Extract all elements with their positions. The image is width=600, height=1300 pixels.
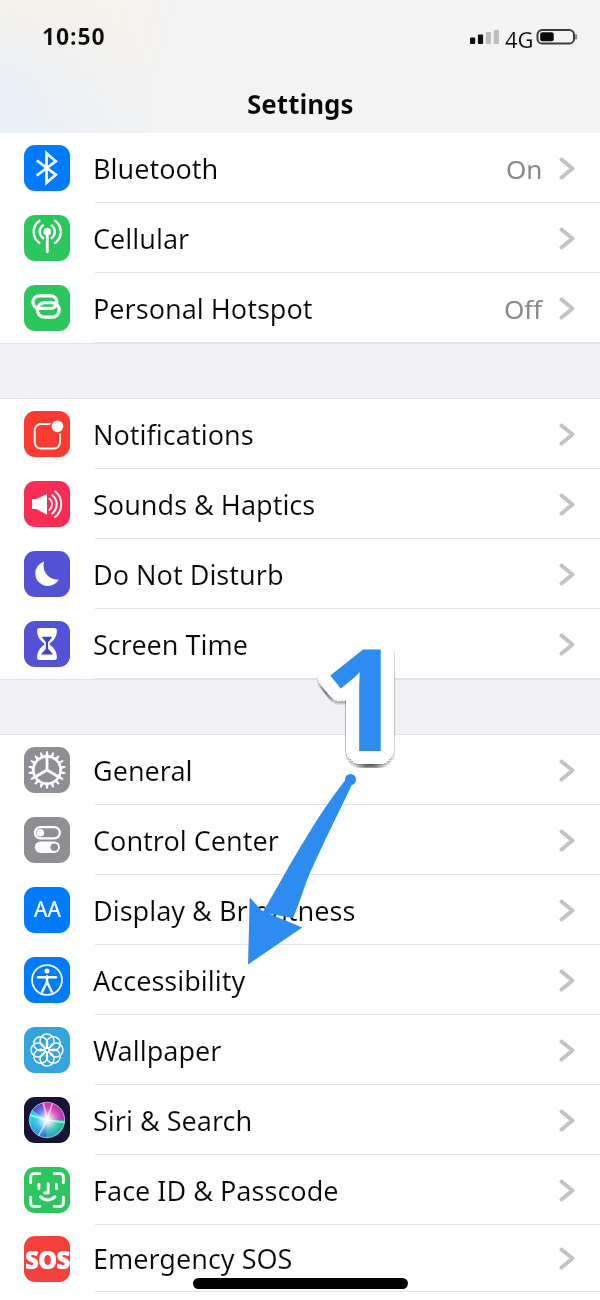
staticText: 1 [316,587,398,753]
staticText: 1 [318,596,400,762]
staticText: 1 [328,589,410,755]
staticText: 1 [327,597,409,763]
staticText: 1 [321,594,403,760]
staticText: 1 [323,604,405,770]
button[interactable]: Sounds & Haptics [0,469,600,539]
staticText: 1 [313,613,395,779]
staticText: 1 [313,599,395,765]
staticText: 1 [324,590,406,756]
button[interactable]: Cellular [0,203,600,273]
staticText: 1 [321,604,403,770]
staticText: 1 [331,591,413,757]
staticText: 1 [322,599,404,765]
staticText: 1 [326,607,408,773]
staticText: 1 [309,596,391,762]
staticText: Face ID & Passcode [93,1172,339,1209]
staticText: 1 [319,588,401,754]
staticText: Emergency SOS [93,1240,293,1277]
staticText: 1 [326,602,408,768]
staticText: 1 [311,593,393,759]
staticText: 1 [309,608,391,774]
staticText: 1 [318,607,400,773]
button[interactable]: Accessibility [0,945,600,1015]
staticText: 1 [323,594,405,760]
staticText: 1 [331,597,413,763]
staticText: 1 [319,612,401,778]
button[interactable]: Do Not Disturb [0,539,600,609]
staticText: 1 [319,595,401,761]
staticText: SOS [25,1243,70,1276]
staticText: 1 [328,611,410,777]
staticText: 1 [317,597,399,763]
staticText: 1 [322,594,404,760]
button[interactable]: Notifications [0,399,600,469]
button[interactable]: Siri & Search [0,1085,600,1155]
staticText: 1 [335,599,417,765]
staticText: 1 [308,602,390,768]
staticText: General [93,752,193,789]
staticText: 1 [335,596,417,762]
button[interactable]: SOS [0,1225,600,1292]
staticText: 1 [328,592,410,758]
staticText: 1 [317,600,399,766]
staticText: 1 [317,601,399,767]
button[interactable]: Wallpaper [0,1015,600,1085]
staticText: Cellular [93,220,190,257]
staticText: 1 [316,606,398,772]
staticText: 1 [308,605,390,771]
staticText: Wallpaper [93,1032,222,1069]
button[interactable]: Personal Hotspot [0,273,600,343]
staticText: 1 [309,602,391,768]
staticText: 1 [320,590,402,756]
staticText: 1 [328,606,410,772]
staticText: 1 [330,595,412,761]
staticText: 1 [327,599,409,765]
button[interactable]: Bluetooth [0,133,600,203]
staticText: 1 [327,598,409,764]
staticText: 1 [329,593,411,759]
staticText: Notifications [93,416,254,453]
staticText: Accessibility [93,962,246,999]
staticText: 1 [314,603,396,769]
staticText: 1 [322,604,404,770]
staticText: 1 [312,591,394,757]
staticText: 1 [322,588,404,754]
staticText: 1 [322,608,404,774]
staticText: 10:50 [42,20,106,51]
staticText: 1 [335,608,417,774]
button[interactable]: Screen Time [0,609,600,679]
staticText: 1 [333,593,415,759]
staticText: 1 [313,591,395,757]
staticText: 1 [311,611,393,777]
button[interactable]: General [0,735,600,805]
button[interactable]: AA [0,875,600,945]
staticText: Off [504,291,543,326]
staticText: 1 [322,586,404,752]
staticText: 1 [336,599,418,765]
staticText: 1 [324,608,406,774]
staticText: 1 [326,596,408,762]
staticText: 1 [322,616,404,782]
staticText: 4G [505,24,534,54]
staticText: 1 [320,608,402,774]
staticText: 1 [310,605,392,771]
staticText: 1 [316,592,398,758]
staticText: Bluetooth [93,150,219,187]
staticText: 1 [315,605,397,771]
staticText: 1 [325,595,407,761]
staticText: Personal Hotspot [93,290,313,327]
staticText: Display & Brightness [93,892,356,929]
staticText: 1 [325,616,407,782]
staticText: Sounds & Haptics [93,486,316,523]
staticText: 1 [317,598,399,764]
staticText: 1 [322,590,404,756]
staticText: 1 [319,586,401,752]
button[interactable]: Control Center [0,805,600,875]
button[interactable]: Face ID & Passcode [0,1155,600,1225]
staticText: Screen Time [93,626,249,663]
staticText: 1 [334,593,416,759]
staticText: 1 [332,607,414,773]
staticText: 1 [336,605,418,771]
staticText: 1 [330,603,412,769]
staticText: 1 [331,613,413,779]
